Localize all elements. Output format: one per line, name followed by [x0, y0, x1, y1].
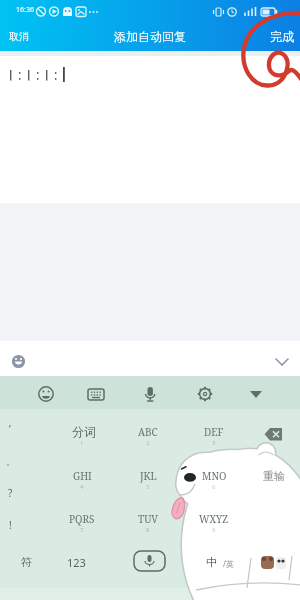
staticText: ?	[8, 486, 13, 500]
button[interactable]: /英	[218, 548, 238, 578]
button[interactable]: DEF	[184, 410, 244, 453]
staticText: 7	[80, 526, 84, 534]
staticText: 符	[21, 555, 32, 569]
button[interactable]: ABC	[118, 410, 178, 453]
button[interactable]: !	[2, 517, 18, 533]
staticText: 123	[67, 555, 86, 570]
staticText: 5	[146, 483, 150, 491]
button[interactable]: ?	[2, 485, 18, 501]
button[interactable]: 重输	[244, 454, 300, 497]
button[interactable]: MNO	[184, 454, 244, 497]
staticText: 1	[80, 439, 84, 447]
button[interactable]: 取消	[6, 28, 32, 44]
staticText: WXYZ	[199, 512, 229, 526]
button[interactable]	[250, 412, 294, 446]
button[interactable]	[128, 545, 172, 577]
button[interactable]: 分词	[54, 410, 114, 453]
button[interactable]: 中	[202, 546, 220, 578]
staticText: 9	[212, 526, 216, 534]
staticText: 6	[212, 483, 216, 491]
button[interactable]	[84, 382, 108, 406]
button[interactable]: TUV	[118, 497, 178, 540]
staticText: 4	[80, 483, 84, 491]
staticText: GHI	[73, 469, 92, 483]
staticText: 取消	[9, 30, 29, 43]
staticText: DEF	[204, 425, 224, 439]
button[interactable]	[138, 382, 162, 406]
button[interactable]: ’	[2, 421, 18, 437]
staticText: 重输	[263, 469, 285, 483]
button[interactable]	[193, 382, 217, 406]
staticText: 2	[146, 439, 150, 447]
button[interactable]	[270, 352, 294, 370]
staticText: ABC	[138, 425, 158, 439]
staticText: /英	[223, 558, 234, 569]
staticText: 3	[212, 439, 216, 447]
button[interactable]	[34, 382, 58, 406]
staticText: MNO	[202, 469, 227, 483]
button[interactable]	[8, 350, 32, 372]
staticText: ’	[9, 422, 11, 436]
staticText: 分词	[72, 424, 96, 439]
staticText: JKL	[140, 469, 157, 483]
button[interactable]: WXYZ	[184, 497, 244, 540]
button[interactable]: 完成	[266, 27, 298, 45]
button[interactable]: GHI	[52, 454, 112, 497]
staticText: 16:36	[16, 5, 34, 14]
button[interactable]: JKL	[118, 454, 178, 497]
button[interactable]: 符	[8, 545, 44, 579]
button[interactable]: 。	[2, 453, 18, 469]
staticText: 完成	[270, 29, 294, 44]
staticText: !	[9, 518, 12, 532]
staticText: 8	[146, 526, 150, 534]
button[interactable]: 123	[58, 545, 94, 579]
staticText: TUV	[138, 512, 159, 526]
button[interactable]: PQRS	[52, 497, 112, 540]
button[interactable]	[244, 382, 268, 406]
staticText: 中	[206, 555, 217, 569]
staticText: 添加自动回复	[114, 29, 186, 44]
button[interactable]	[250, 548, 294, 576]
staticText: PQRS	[69, 512, 95, 526]
staticText: 。	[6, 456, 15, 467]
